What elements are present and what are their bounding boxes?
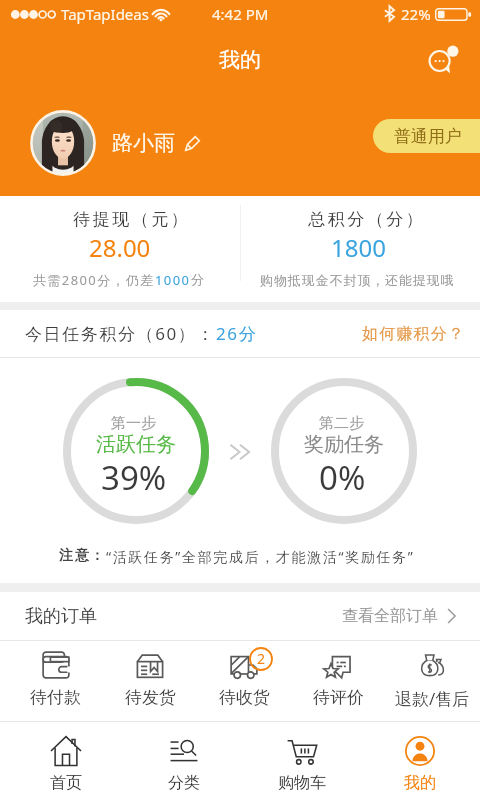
staticText: 39%: [101, 455, 167, 500]
staticText: 我的: [219, 47, 261, 73]
staticText: 第一步: [111, 414, 156, 433]
staticText: 1800: [331, 231, 386, 264]
staticText: 退款/售后: [395, 687, 470, 710]
staticText: 4:42 PM: [212, 4, 269, 24]
staticText: 今日任务积分（60）：: [25, 322, 216, 345]
button[interactable]: 今日任务积分（60）：: [25, 322, 258, 345]
button[interactable]: Messages: [426, 43, 460, 77]
button[interactable]: 普通用户: [373, 119, 480, 153]
staticText: 26分: [216, 322, 258, 345]
button[interactable]: [0, 196, 240, 302]
staticText: 共需2800分，仍差: [33, 271, 155, 289]
staticText: 待评价: [313, 687, 364, 708]
staticText: 奖励任务: [304, 432, 384, 457]
button[interactable]: 待评价: [291, 641, 385, 708]
staticText: 1000: [155, 271, 191, 289]
staticText: 2: [257, 649, 266, 668]
button[interactable]: 如何赚积分？: [362, 324, 466, 344]
button[interactable]: 2: [197, 641, 291, 708]
staticText: 我的: [404, 773, 436, 793]
staticText: 活跃任务: [96, 432, 176, 457]
staticText: 待收货: [219, 687, 270, 708]
button[interactable]: 我的订单: [0, 592, 480, 640]
button[interactable]: 首页: [7, 722, 125, 793]
staticText: TapTapIdeas: [61, 4, 149, 24]
button[interactable]: 退款/售后: [385, 641, 479, 710]
staticText: 0%: [319, 455, 366, 500]
button[interactable]: 第二步: [271, 378, 417, 524]
staticText: 28.00: [89, 231, 151, 264]
staticText: 首页: [50, 773, 82, 793]
button[interactable]: 第一步: [63, 378, 209, 524]
button[interactable]: 购物车: [243, 722, 361, 793]
staticText: 分: [191, 271, 206, 287]
button[interactable]: 分类: [125, 722, 243, 793]
staticText: 普通用户: [394, 126, 462, 147]
button[interactable]: 待付款: [8, 641, 103, 708]
staticText: 分类: [168, 773, 200, 793]
staticText: 购物车: [278, 773, 326, 793]
staticText: 查看全部订单: [342, 606, 438, 626]
staticText: 购物抵现金不封顶，还能提现哦: [260, 272, 455, 288]
staticText: 22%: [401, 4, 431, 24]
button[interactable]: Edit nickname: [184, 135, 201, 152]
staticText: 待付款: [30, 687, 81, 708]
staticText: 我的订单: [25, 605, 97, 628]
staticText: 待提现（元）: [72, 209, 189, 230]
button[interactable]: [240, 196, 480, 302]
staticText: 待发货: [125, 687, 176, 708]
button[interactable]: Avatar: [30, 110, 96, 176]
staticText: 如何赚积分？: [362, 324, 466, 344]
staticText: 第二步: [319, 414, 364, 433]
staticText: 注意：: [59, 547, 106, 565]
staticText: 总积分（分）: [307, 209, 424, 230]
button[interactable]: 待发货: [103, 641, 197, 708]
staticText: “活跃任务”全部完成后，才能激活“奖励任务”: [106, 547, 415, 566]
button[interactable]: 我的: [361, 722, 479, 793]
staticText: 路小雨: [112, 130, 175, 156]
